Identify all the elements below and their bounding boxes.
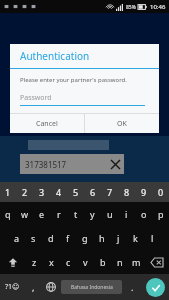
button[interactable]: y — [84, 202, 101, 226]
button[interactable]: e — [33, 202, 50, 226]
staticText: Authentication — [20, 49, 90, 63]
button[interactable]: Clear text — [106, 155, 124, 173]
staticText: t — [74, 208, 78, 220]
staticText: e — [39, 208, 45, 220]
button[interactable]: Bahasa Indonesia — [61, 280, 122, 294]
staticText: y — [90, 208, 95, 220]
staticText: 10:46 — [150, 3, 166, 11]
staticText: o — [141, 208, 147, 220]
button[interactable]: 2 — [16, 182, 33, 202]
staticText: Bahasa Indonesia — [71, 284, 113, 291]
button[interactable]: Password — [20, 93, 145, 106]
button[interactable]: Done — [141, 274, 169, 300]
staticText: i — [125, 208, 128, 220]
staticText: 85% — [126, 4, 136, 11]
button[interactable]: 1 — [0, 182, 16, 202]
staticText: 4 — [56, 186, 62, 198]
staticText: 5 — [73, 186, 79, 198]
staticText: j — [117, 232, 120, 244]
button[interactable]: , — [25, 274, 42, 300]
staticText: 317381517 — [25, 159, 106, 170]
staticText: , — [32, 281, 35, 293]
staticText: a — [14, 232, 20, 244]
button[interactable]: ?1☺ — [0, 274, 25, 300]
staticText: 6 — [90, 186, 96, 198]
button[interactable]: u — [101, 202, 118, 226]
button[interactable]: m — [128, 250, 145, 274]
staticText: 9 — [141, 186, 147, 198]
staticText: l — [151, 232, 154, 244]
button[interactable]: v — [77, 250, 94, 274]
button[interactable]: p — [152, 202, 169, 226]
staticText: OK — [117, 119, 127, 129]
staticText: b — [100, 256, 106, 268]
button[interactable]: o — [135, 202, 152, 226]
staticText: 8 — [124, 186, 130, 198]
button[interactable]: Cancel — [10, 114, 84, 133]
button[interactable]: n — [111, 250, 128, 274]
button[interactable]: h — [93, 226, 110, 250]
staticText: p — [158, 208, 164, 220]
staticText: 7 — [107, 186, 113, 198]
button[interactable]: g — [76, 226, 93, 250]
staticText: v — [83, 256, 88, 268]
staticText: z — [32, 256, 37, 268]
button[interactable]: d — [42, 226, 59, 250]
staticText: k — [133, 232, 138, 244]
button[interactable]: 8 — [118, 182, 135, 202]
button[interactable]: 3 — [33, 182, 50, 202]
button[interactable]: k — [127, 226, 144, 250]
button[interactable]: c — [60, 250, 77, 274]
button[interactable]: w — [16, 202, 33, 226]
button[interactable]: 6 — [84, 182, 101, 202]
staticText: c — [66, 256, 71, 268]
button[interactable]: 9 — [135, 182, 152, 202]
button[interactable]: Backspace — [145, 250, 169, 274]
staticText: 1 — [5, 186, 11, 198]
button[interactable]: q — [0, 202, 16, 226]
button[interactable]: z — [25, 250, 43, 274]
staticText: ?1☺ — [5, 282, 20, 292]
staticText: h — [99, 232, 105, 244]
button[interactable]: x — [43, 250, 60, 274]
staticText: f — [66, 232, 70, 244]
button[interactable]: Change language — [42, 274, 59, 300]
button[interactable]: . — [124, 274, 141, 300]
staticText: q — [5, 208, 11, 220]
button[interactable]: 0 — [152, 182, 169, 202]
button[interactable]: 317381517 — [20, 154, 124, 174]
staticText: 2 — [22, 186, 28, 198]
button[interactable]: 7 — [101, 182, 118, 202]
staticText: . — [131, 281, 134, 293]
button[interactable]: b — [94, 250, 111, 274]
button[interactable]: 4 — [50, 182, 67, 202]
staticText: Password — [20, 93, 52, 103]
button[interactable]: 5 — [67, 182, 84, 202]
staticText: Please enter your partner's password. — [20, 76, 127, 84]
button[interactable]: j — [110, 226, 127, 250]
staticText: x — [49, 256, 54, 268]
staticText: Cancel — [36, 119, 58, 129]
staticText: u — [107, 208, 113, 220]
staticText: 0 — [158, 186, 164, 198]
staticText: g — [82, 232, 88, 244]
staticText: n — [117, 256, 123, 268]
button[interactable]: Shift — [0, 250, 25, 274]
button[interactable]: a — [8, 226, 25, 250]
button[interactable]: t — [67, 202, 84, 226]
staticText: s — [31, 232, 36, 244]
staticText: 3 — [39, 186, 45, 198]
button[interactable]: s — [25, 226, 42, 250]
button[interactable]: r — [50, 202, 67, 226]
staticText: d — [48, 232, 54, 244]
button[interactable]: f — [59, 226, 76, 250]
staticText: w — [21, 208, 29, 220]
button[interactable]: i — [118, 202, 135, 226]
button[interactable]: l — [144, 226, 161, 250]
staticText: m — [132, 256, 141, 268]
staticText: r — [57, 208, 61, 220]
button[interactable]: OK — [85, 114, 159, 133]
